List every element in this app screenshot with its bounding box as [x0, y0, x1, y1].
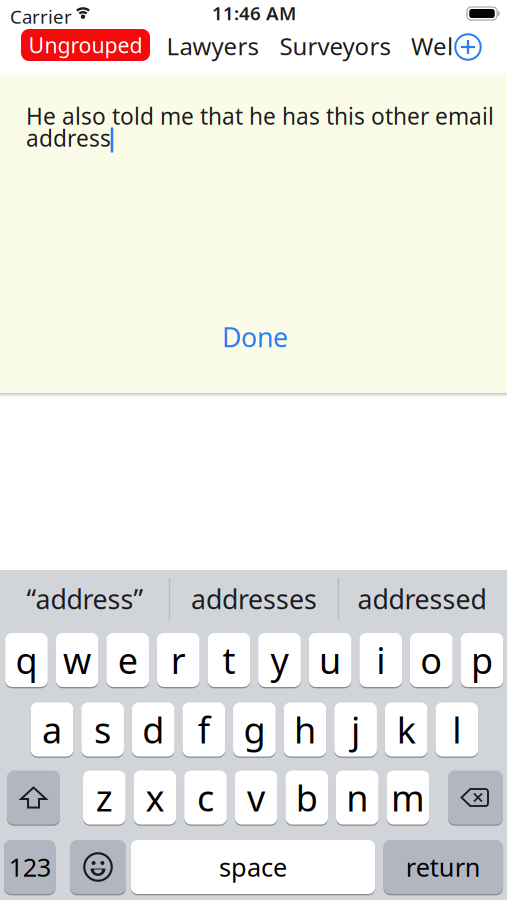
staticText: k [397, 706, 416, 753]
button[interactable]: k [385, 701, 427, 757]
staticText: x [145, 774, 164, 821]
button[interactable]: Emoji [70, 839, 126, 895]
button[interactable]: c [184, 769, 227, 825]
button[interactable]: l [435, 701, 478, 757]
staticText: Lawyers [166, 30, 258, 62]
staticText: g [243, 706, 265, 753]
staticText: z [96, 774, 113, 821]
button[interactable]: z [83, 769, 126, 825]
button[interactable]: v [235, 769, 277, 825]
button[interactable]: b [285, 769, 328, 825]
staticText: o [420, 636, 442, 684]
button[interactable]: Ungrouped [21, 29, 150, 61]
staticText: q [15, 636, 37, 684]
staticText: b [296, 774, 318, 821]
staticText: 11:46 AM [212, 1, 296, 25]
button[interactable]: s [81, 701, 124, 757]
staticText: p [471, 636, 493, 684]
staticText: i [376, 636, 385, 684]
staticText: w [63, 636, 91, 684]
button[interactable]: d [132, 701, 174, 757]
staticText: d [142, 706, 164, 753]
staticText: m [391, 774, 425, 821]
staticText: n [346, 774, 368, 821]
button[interactable]: i [359, 632, 402, 688]
staticText: return [406, 850, 481, 884]
button[interactable]: y [258, 632, 301, 688]
staticText: t [222, 636, 235, 684]
button[interactable]: r [157, 632, 200, 688]
button[interactable]: addressed [339, 572, 505, 626]
button[interactable]: Lawyers [152, 29, 272, 63]
staticText: address [26, 123, 111, 153]
button[interactable]: Done [210, 319, 300, 355]
staticText: 123 [9, 850, 51, 884]
button[interactable]: o [410, 632, 453, 688]
staticText: He also told me that he has this other e… [26, 101, 494, 131]
button[interactable]: “address” [1, 572, 169, 626]
staticText: r [171, 636, 186, 684]
button[interactable]: Surveyors [270, 29, 400, 63]
button[interactable]: p [460, 632, 503, 688]
staticText: c [197, 774, 214, 821]
staticText: Carrier [10, 4, 72, 29]
staticText: h [294, 706, 316, 753]
staticText: Wel [411, 30, 453, 62]
button[interactable]: g [233, 701, 276, 757]
staticText: Surveyors [279, 30, 390, 62]
staticText: u [319, 636, 341, 684]
button[interactable]: t [208, 632, 250, 688]
staticText: l [452, 706, 461, 753]
button[interactable]: Delete [448, 769, 503, 825]
staticText: s [94, 706, 111, 753]
staticText: space [219, 850, 287, 884]
staticText: v [247, 774, 265, 821]
button[interactable]: Add Group [453, 32, 483, 62]
button[interactable]: u [309, 632, 351, 688]
button[interactable]: Wel [404, 29, 460, 63]
staticText: Ungrouped [28, 31, 142, 59]
button[interactable]: Shift [7, 769, 60, 825]
staticText: addressed [357, 581, 486, 617]
staticText: y [270, 636, 288, 684]
button[interactable]: a [31, 701, 73, 757]
button[interactable]: m [386, 769, 429, 825]
staticText: “address” [26, 581, 143, 617]
button[interactable]: e [106, 632, 149, 688]
staticText: Done [222, 319, 288, 355]
button[interactable]: 123 [4, 839, 55, 895]
button[interactable]: return [384, 839, 503, 895]
button[interactable]: q [5, 632, 48, 688]
button[interactable]: h [284, 701, 326, 757]
button[interactable]: n [336, 769, 379, 825]
staticText: a [42, 706, 62, 753]
button[interactable]: w [56, 632, 98, 688]
button[interactable]: space [131, 839, 375, 895]
staticText: f [198, 706, 210, 753]
staticText: addresses [191, 581, 317, 617]
button[interactable]: j [334, 701, 377, 757]
button[interactable]: f [182, 701, 225, 757]
button[interactable]: addresses [170, 572, 338, 626]
staticText: j [351, 706, 360, 753]
staticText: e [118, 636, 138, 684]
button[interactable]: x [134, 769, 176, 825]
